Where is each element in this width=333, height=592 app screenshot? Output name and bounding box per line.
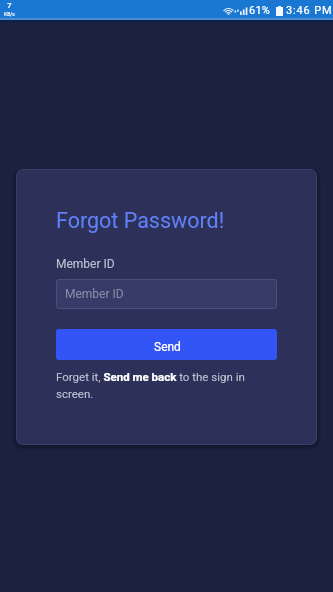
button[interactable]: Member ID input field [56, 279, 277, 309]
staticText: Send [154, 340, 181, 354]
staticText: 61% [249, 4, 271, 17]
staticText: KB/s [4, 11, 15, 17]
button[interactable]: Send [56, 329, 277, 360]
staticText: Forgot Password! [56, 208, 225, 233]
staticText: 3:46 PM [286, 4, 333, 17]
staticText: 7 [7, 1, 12, 10]
staticText: Member ID [65, 287, 124, 301]
button[interactable]: Forget it, Send me back to the sign in s… [56, 368, 277, 402]
staticText: Member ID [56, 257, 115, 271]
